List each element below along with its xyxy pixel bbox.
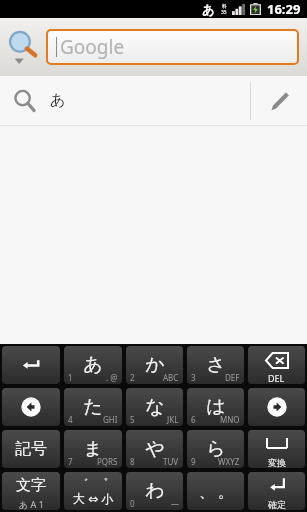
staticText: わ xyxy=(145,479,165,503)
staticText: 記号 xyxy=(15,439,47,459)
staticText: あ xyxy=(202,2,215,17)
staticText: 2 xyxy=(130,372,135,383)
staticText: TUV xyxy=(163,456,179,467)
button[interactable]: Confirm xyxy=(248,472,305,510)
button[interactable]: Move cursor right xyxy=(248,388,305,426)
staticText: 料 xyxy=(222,3,227,9)
staticText: 0 xyxy=(130,498,135,509)
staticText: JKL xyxy=(167,414,179,425)
staticText: GHI xyxy=(103,414,118,425)
staticText: 16:29 xyxy=(267,0,301,18)
staticText: — xyxy=(171,498,179,509)
button[interactable]: Google xyxy=(48,31,297,63)
staticText: は xyxy=(206,395,226,419)
staticText: さ xyxy=(206,353,226,377)
staticText: . @ xyxy=(106,372,118,383)
button[interactable]: た xyxy=(64,388,122,426)
staticText: 7 xyxy=(68,456,73,467)
staticText: 4 xyxy=(68,414,73,425)
button[interactable]: Delete xyxy=(248,346,305,384)
staticText: ABC xyxy=(163,372,179,383)
staticText: ゛ ゜ xyxy=(77,475,109,490)
button[interactable]: あ xyxy=(64,346,122,384)
staticText: 1 xyxy=(68,372,73,383)
staticText: 変換 xyxy=(268,457,286,468)
button[interactable]: Edit query xyxy=(251,76,307,125)
button[interactable]: ま xyxy=(64,430,122,468)
button[interactable]: 記号 xyxy=(2,430,60,468)
staticText: た xyxy=(83,395,103,419)
staticText: 文字 xyxy=(16,476,46,495)
staticText: あ A 1 xyxy=(19,498,44,510)
button[interactable]: さ xyxy=(187,346,244,384)
staticText: 、 。 xyxy=(199,481,233,501)
staticText: あ xyxy=(50,91,66,110)
staticText: DEF xyxy=(225,372,240,383)
staticText: 大 ⇔ 小 xyxy=(73,490,114,506)
button[interactable]: Switch input mode xyxy=(2,472,60,510)
button[interactable]: 、 。 xyxy=(187,472,244,510)
button[interactable]: Search provider xyxy=(0,18,46,76)
button[interactable]: な xyxy=(126,388,183,426)
staticText: 8 xyxy=(130,456,135,467)
staticText: な xyxy=(145,395,165,419)
button[interactable]: ら xyxy=(187,430,244,468)
staticText: ら xyxy=(206,437,226,461)
button[interactable]: Convert xyxy=(248,430,305,468)
button[interactable]: あ xyxy=(0,76,307,125)
button[interactable]: は xyxy=(187,388,244,426)
staticText: か xyxy=(145,353,165,377)
staticText: あ xyxy=(83,353,103,377)
staticText: WXYZ xyxy=(218,456,240,467)
staticText: 35 xyxy=(221,9,227,16)
staticText: ま xyxy=(83,437,103,461)
staticText: DEL xyxy=(268,372,285,384)
staticText: PQRS xyxy=(97,456,118,467)
staticText: MNO xyxy=(220,414,240,425)
staticText: や xyxy=(145,437,165,461)
button[interactable]: Undo xyxy=(2,346,60,384)
staticText: 確定 xyxy=(268,499,286,510)
staticText: 9 xyxy=(191,456,196,467)
button[interactable]: か xyxy=(126,346,183,384)
button[interactable]: や xyxy=(126,430,183,468)
staticText: 6 xyxy=(191,414,196,425)
button[interactable]: わ xyxy=(126,472,183,510)
button[interactable]: Dakuten and small xyxy=(64,472,122,510)
staticText: 5 xyxy=(130,414,135,425)
button[interactable]: Move cursor left xyxy=(2,388,60,426)
staticText: Google xyxy=(60,34,125,60)
staticText: 3 xyxy=(191,372,196,383)
